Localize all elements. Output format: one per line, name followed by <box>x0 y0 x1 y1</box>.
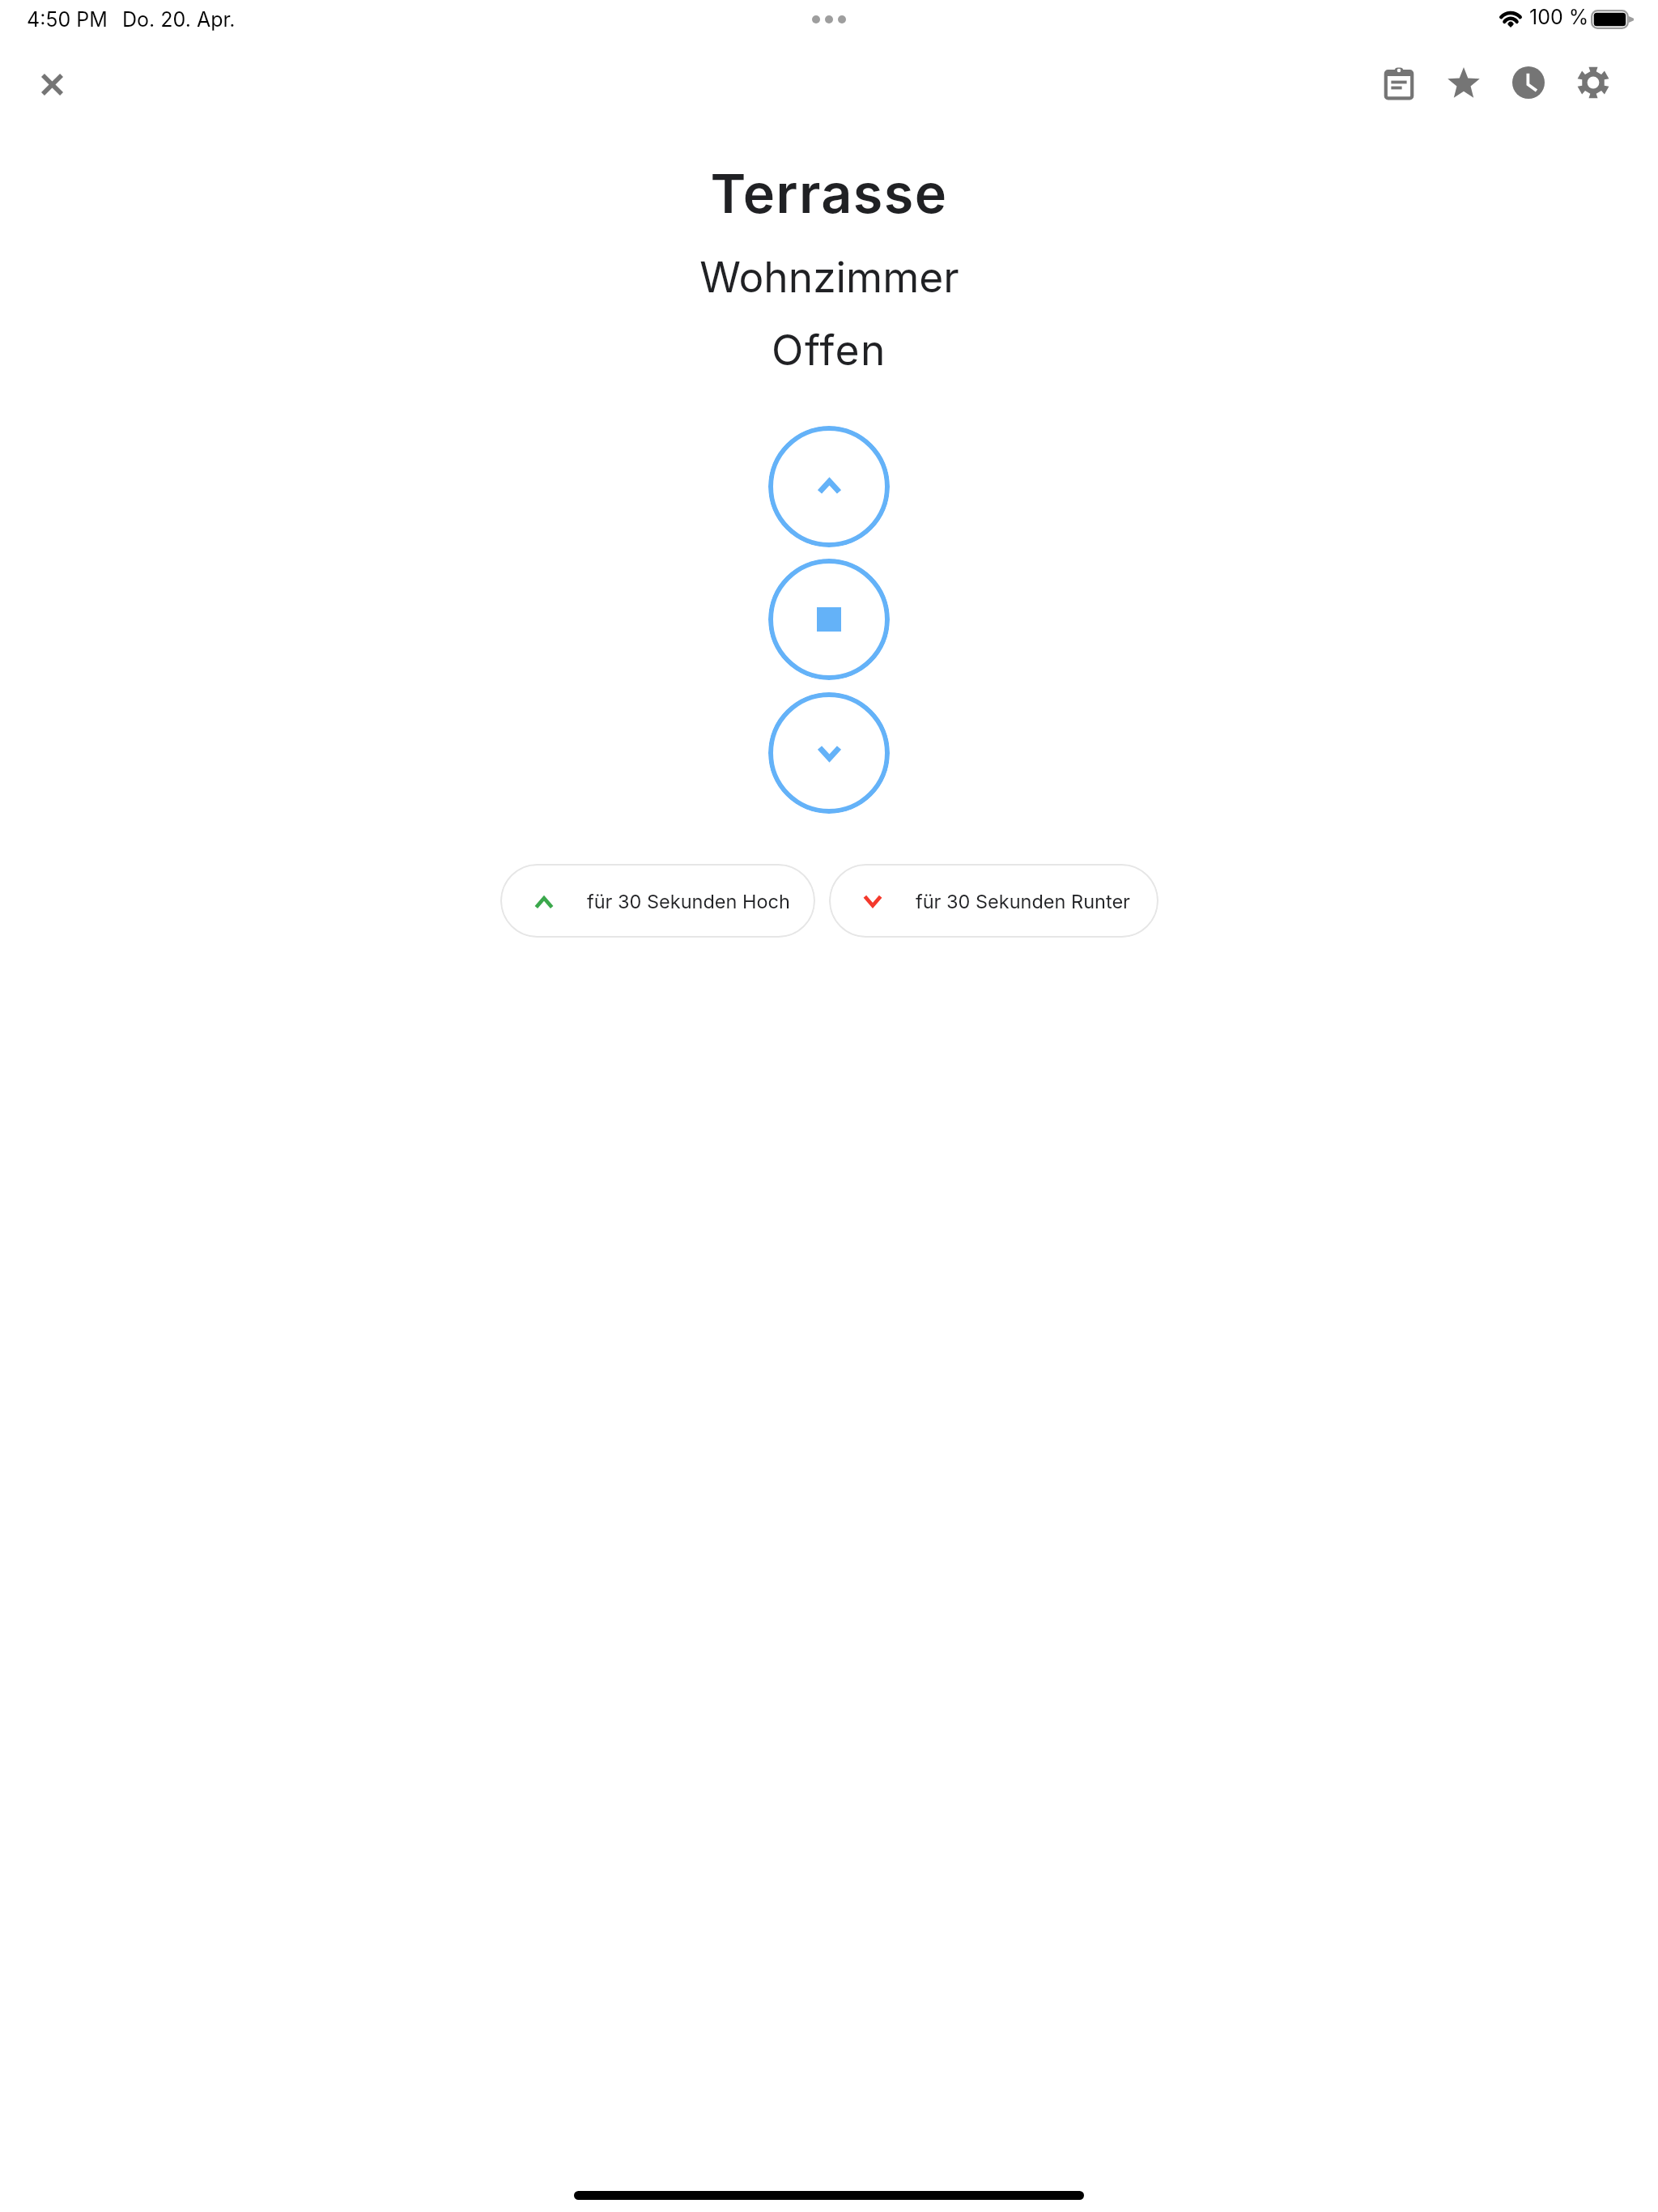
staticText: Offen <box>772 325 886 375</box>
button[interactable]: Raise cover <box>768 426 890 547</box>
staticText: 4:50 PM <box>27 7 108 32</box>
button[interactable]: History <box>1496 50 1561 115</box>
staticText: für 30 Sekunden Hoch <box>587 890 790 912</box>
staticText: für 30 Sekunden Runter <box>916 890 1130 912</box>
staticText: Wohnzimmer <box>699 252 959 302</box>
button[interactable]: Log book <box>1367 50 1431 115</box>
button[interactable]: Stop cover <box>768 559 890 680</box>
button[interactable]: Settings <box>1561 50 1626 115</box>
staticText: Do. 20. Apr. <box>122 7 236 32</box>
button[interactable]: für 30 Sekunden Hoch <box>500 864 815 938</box>
button[interactable]: Favorites <box>1431 50 1496 115</box>
button[interactable]: Lower cover <box>768 692 890 814</box>
button[interactable]: Close <box>13 45 91 123</box>
staticText: 100 % <box>1529 5 1589 29</box>
button[interactable]: für 30 Sekunden Runter <box>829 864 1158 938</box>
staticText: Terrasse <box>710 161 948 226</box>
